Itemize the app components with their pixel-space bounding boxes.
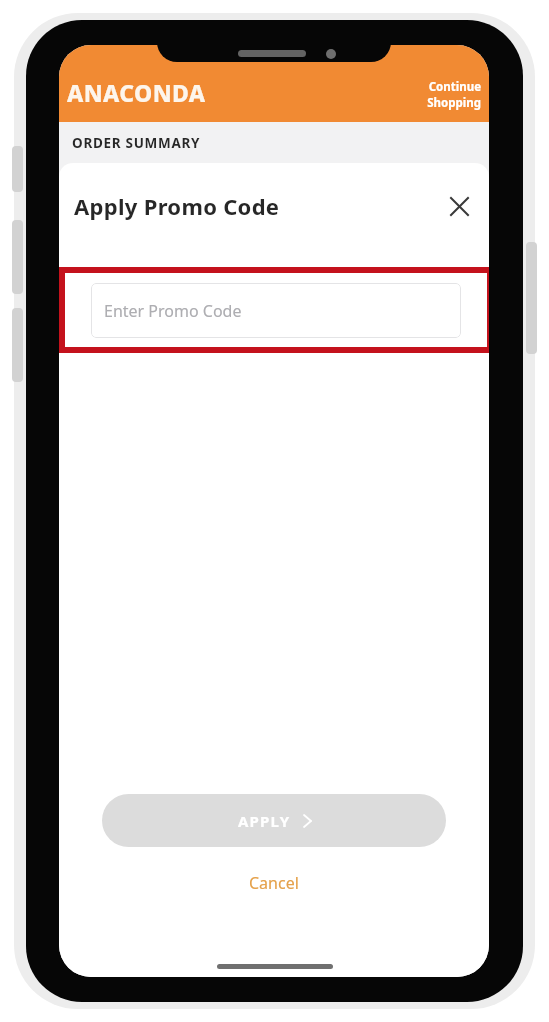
staticText: ORDER SUMMARY [72, 134, 201, 152]
button[interactable]: Enter Promo Code [91, 283, 461, 338]
staticText: APPLY [238, 811, 291, 831]
staticText: Apply Promo Code [74, 191, 280, 221]
button[interactable]: APPLY [102, 794, 446, 847]
button[interactable]: Cancel [231, 867, 317, 899]
button[interactable]: Close [441, 188, 477, 224]
button[interactable]: Continue Shopping [427, 79, 489, 122]
staticText: Enter Promo Code [104, 300, 242, 322]
button[interactable]: ANACONDA [59, 77, 206, 122]
